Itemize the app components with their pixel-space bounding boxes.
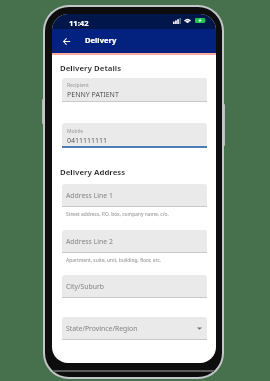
staticText: State/Province/Region (66, 324, 138, 333)
staticText: PENNY PATIENT (67, 90, 119, 100)
staticText: Recipient (67, 82, 89, 89)
button[interactable]: Address Line 2 (62, 230, 207, 253)
staticText: Apartment, suite, unit, building, floor,… (66, 257, 162, 264)
staticText: Address Line 1 (66, 191, 113, 200)
staticText: City/Suburb (66, 282, 105, 291)
staticText: Address Line 2 (66, 237, 113, 246)
button[interactable]: Recipient (62, 78, 207, 102)
staticText: Mobile (67, 128, 84, 135)
staticText: Delivery Details (60, 63, 122, 74)
staticText: Street address, P.O. box, company name, … (66, 211, 169, 218)
button[interactable]: City/Suburb (62, 275, 207, 298)
button[interactable]: Address Line 1 (62, 184, 207, 207)
staticText: 0411111111 (67, 136, 108, 146)
staticText: 11:42 (69, 18, 89, 28)
button[interactable]: State/Province/Region (62, 317, 207, 340)
staticText: Delivery Address (60, 167, 126, 178)
staticText: Delivery (85, 35, 117, 45)
button[interactable]: Back (57, 31, 76, 52)
button[interactable]: Mobile (62, 123, 207, 148)
